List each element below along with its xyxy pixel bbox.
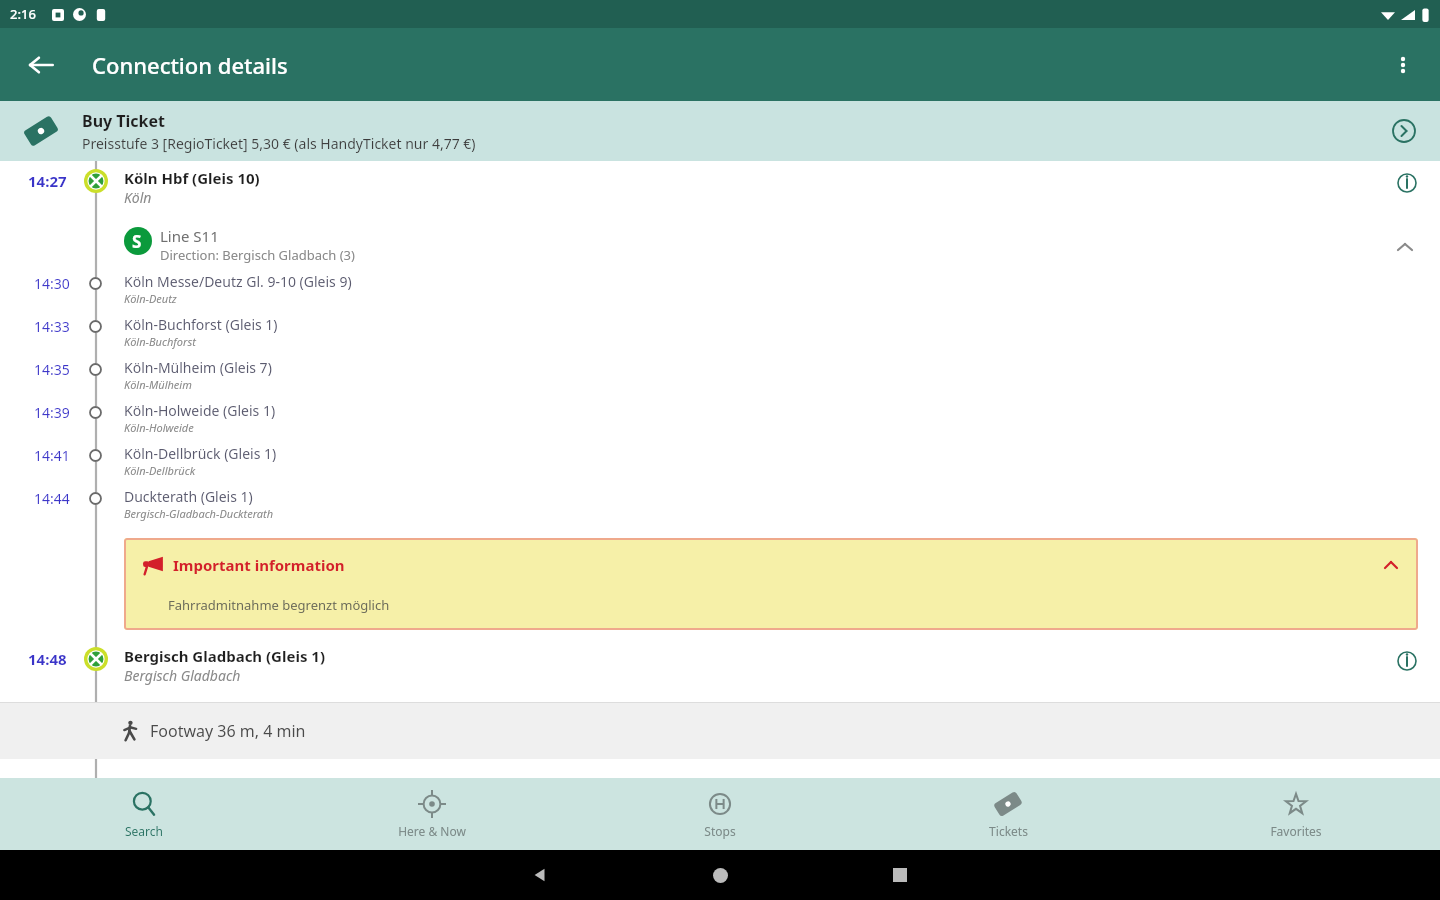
staticText: Here & Now bbox=[398, 823, 466, 839]
staticText: Köln-Dellbrück (Gleis 1) bbox=[124, 444, 277, 463]
staticText: Search bbox=[125, 823, 163, 839]
other: Back bbox=[531, 866, 549, 884]
staticText: Footway 36 m, 4 min bbox=[150, 720, 306, 742]
staticText: Duckterath (Gleis 1) bbox=[124, 487, 253, 506]
button[interactable]: Stop information bbox=[1392, 168, 1422, 198]
button[interactable]: 14:30 bbox=[0, 272, 1440, 315]
staticText: 14:44 bbox=[34, 489, 70, 508]
staticText: Connection details bbox=[92, 50, 288, 80]
button[interactable]: 14:48 bbox=[0, 644, 1440, 690]
button[interactable]: Favorites bbox=[1152, 778, 1440, 850]
staticText: Preisstufe 3 [RegioTicket] 5,30 € (als H… bbox=[82, 134, 476, 153]
staticText: 14:39 bbox=[34, 403, 70, 422]
staticText: Favorites bbox=[1270, 823, 1322, 839]
button[interactable]: Stops bbox=[576, 778, 864, 850]
staticText: Important information bbox=[173, 555, 345, 575]
button[interactable]: More options bbox=[1380, 42, 1426, 88]
button[interactable]: 14:33 bbox=[0, 315, 1440, 358]
button[interactable]: Open ticket bbox=[1386, 113, 1422, 149]
staticText: Fahrradmitnahme begrenzt möglich bbox=[168, 596, 390, 614]
button[interactable]: 14:44 bbox=[0, 487, 1440, 530]
button[interactable]: Stop information bbox=[1392, 646, 1422, 676]
other: Home bbox=[713, 868, 728, 883]
button[interactable]: 14:41 bbox=[0, 444, 1440, 487]
staticText: Köln-Dellbrück bbox=[124, 463, 196, 478]
button[interactable]: Important information bbox=[124, 538, 1418, 630]
button[interactable]: 14:27 bbox=[0, 166, 1440, 212]
staticText: 14:48 bbox=[28, 649, 67, 669]
staticText: Line S11 bbox=[160, 226, 219, 246]
button[interactable]: Back bbox=[18, 42, 64, 88]
staticText: 14:33 bbox=[34, 317, 70, 336]
button[interactable]: Search bbox=[0, 778, 288, 850]
staticText: Tickets bbox=[989, 823, 1028, 839]
staticText: Köln-Buchforst (Gleis 1) bbox=[124, 315, 278, 334]
staticText: Köln-Deutz bbox=[124, 291, 177, 306]
staticText: Köln-Holweide (Gleis 1) bbox=[124, 401, 276, 420]
button[interactable]: S bbox=[0, 226, 1440, 264]
staticText: 14:30 bbox=[34, 274, 70, 293]
staticText: Köln-Mülheim (Gleis 7) bbox=[124, 358, 272, 377]
button[interactable]: 14:35 bbox=[0, 358, 1440, 401]
button[interactable]: Footway 36 m, 4 min bbox=[0, 703, 1440, 759]
button[interactable]: 14:39 bbox=[0, 401, 1440, 444]
staticText: Köln-Mülheim bbox=[124, 377, 192, 392]
staticText: S bbox=[132, 230, 142, 253]
staticText: Köln-Buchforst bbox=[124, 334, 196, 349]
staticText: Buy Ticket bbox=[82, 110, 166, 132]
button[interactable]: Collapse stops bbox=[1390, 232, 1420, 262]
staticText: Direction: Bergisch Gladbach (3) bbox=[160, 246, 355, 264]
button[interactable]: Tickets bbox=[864, 778, 1152, 850]
staticText: Köln Messe/Deutz Gl. 9-10 (Gleis 9) bbox=[124, 272, 352, 291]
staticText: 14:27 bbox=[28, 171, 67, 191]
staticText: Bergisch Gladbach (Gleis 1) bbox=[124, 646, 325, 666]
button[interactable]: Buy Ticket bbox=[0, 101, 1440, 161]
staticText: 2:16 bbox=[10, 5, 36, 23]
staticText: Köln Hbf (Gleis 10) bbox=[124, 168, 260, 188]
staticText: Köln-Holweide bbox=[124, 420, 194, 435]
staticText: 14:41 bbox=[34, 446, 70, 465]
button[interactable]: Collapse information bbox=[1378, 552, 1404, 578]
staticText: Bergisch-Gladbach-Duckterath bbox=[124, 506, 274, 521]
staticText: 14:35 bbox=[34, 360, 70, 379]
staticText: Köln bbox=[124, 188, 152, 207]
staticText: Stops bbox=[704, 823, 736, 839]
staticText: Bergisch Gladbach bbox=[124, 666, 241, 685]
button[interactable]: Here & Now bbox=[288, 778, 576, 850]
